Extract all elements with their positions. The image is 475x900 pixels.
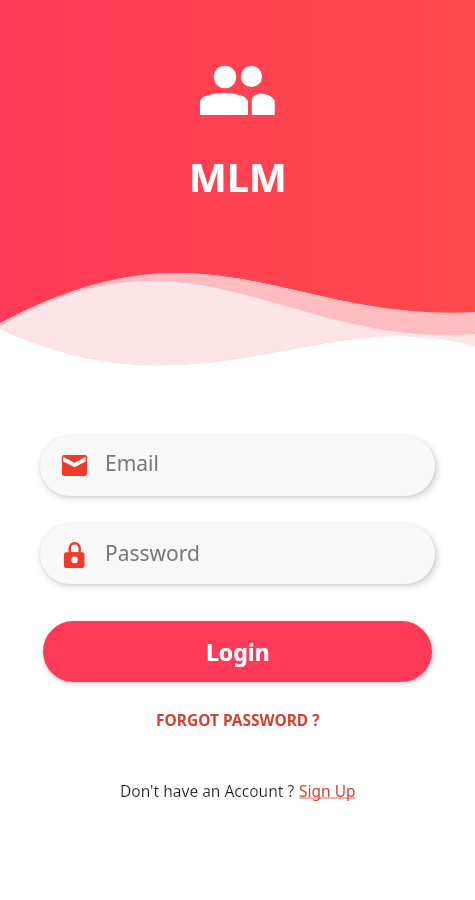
button[interactable]: Email: [40, 436, 435, 496]
other: Email: [62, 455, 87, 476]
button[interactable]: Login: [43, 621, 432, 682]
staticText: FORGOT PASSWORD ?: [156, 709, 320, 730]
button[interactable]: Password: [40, 524, 435, 584]
staticText: Sign Up: [299, 780, 356, 801]
staticText: Password: [105, 539, 200, 568]
other: Password: [64, 541, 85, 569]
button[interactable]: FORGOT PASSWORD ?: [152, 705, 324, 734]
staticText: Login: [206, 636, 270, 667]
staticText: MLM: [189, 149, 287, 203]
staticText: Don't have an Account ?: [120, 780, 299, 801]
button[interactable]: Sign Up: [299, 780, 356, 801]
staticText: Email: [105, 449, 159, 478]
